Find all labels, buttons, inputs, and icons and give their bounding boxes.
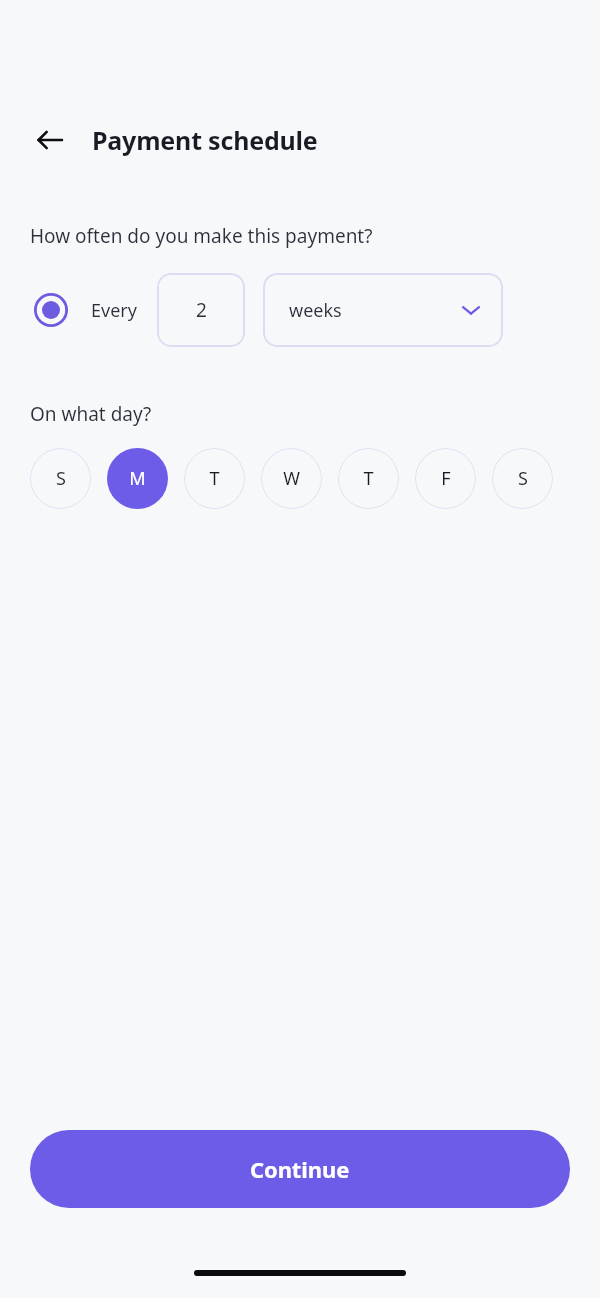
button[interactable]: weeks: [263, 273, 503, 347]
staticText: S: [518, 466, 528, 491]
button[interactable]: M: [107, 448, 168, 509]
button[interactable]: Continue: [30, 1130, 570, 1208]
staticText: M: [129, 466, 146, 491]
staticText: Payment schedule: [92, 123, 318, 157]
button[interactable]: W: [261, 448, 322, 509]
staticText: How often do you make this payment?: [30, 223, 373, 249]
staticText: S: [56, 466, 66, 491]
staticText: Every: [91, 298, 137, 323]
button[interactable]: S: [492, 448, 553, 509]
button[interactable]: Back: [26, 116, 74, 164]
staticText: T: [209, 466, 220, 491]
staticText: On what day?: [30, 401, 152, 427]
staticText: F: [441, 466, 451, 491]
button[interactable]: T: [184, 448, 245, 509]
button[interactable]: F: [415, 448, 476, 509]
button[interactable]: T: [338, 448, 399, 509]
staticText: weeks: [289, 298, 342, 323]
staticText: T: [363, 466, 374, 491]
staticText: Continue: [250, 1154, 350, 1184]
staticText: W: [283, 466, 300, 491]
button[interactable]: 2: [157, 273, 245, 347]
staticText: 2: [196, 297, 207, 323]
button[interactable]: Every selected: [30, 289, 72, 331]
button[interactable]: S: [30, 448, 91, 509]
